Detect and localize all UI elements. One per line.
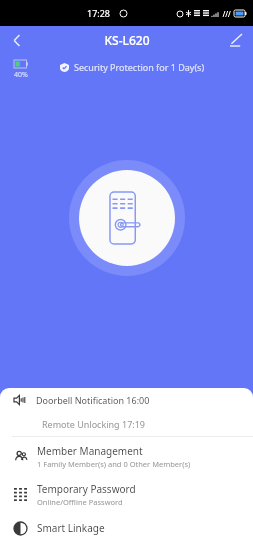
- button[interactable]: Smart Linkage: [0, 513, 253, 543]
- staticText: 1 Family Member(s) and 0 Other Member(s): [37, 459, 191, 469]
- button[interactable]: Doorbell Notification 16:00: [0, 388, 253, 412]
- staticText: Smart Linkage: [37, 521, 105, 535]
- staticText: Security Protection for 1 Day(s): [74, 61, 205, 73]
- button[interactable]: Back: [0, 26, 34, 54]
- button[interactable]: Member Management: [0, 437, 253, 475]
- staticText: Online/Offline Password: [37, 497, 123, 507]
- button[interactable]: Remote Unlocking 17:19: [0, 412, 253, 436]
- button[interactable]: Temporary Password: [0, 475, 253, 513]
- staticText: KS-L620: [104, 32, 150, 48]
- staticText: Doorbell Notification 16:00: [36, 394, 150, 406]
- staticText: 40%: [14, 70, 28, 80]
- button[interactable]: Edit: [219, 26, 253, 54]
- staticText: 17:28: [87, 7, 111, 19]
- staticText: Member Management: [37, 444, 143, 458]
- staticText: Remote Unlocking 17:19: [42, 418, 145, 430]
- button[interactable]: Lock status: [69, 160, 185, 276]
- staticText: Temporary Password: [37, 482, 136, 496]
